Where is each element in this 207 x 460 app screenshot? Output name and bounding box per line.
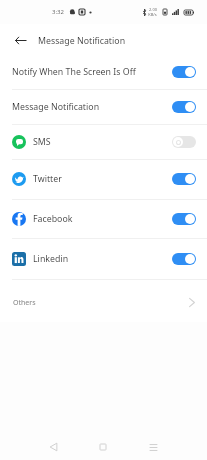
button[interactable]: Back [6,24,34,54]
button[interactable]: Linkedin [0,239,207,280]
button[interactable]: Enabled [172,101,196,113]
button[interactable]: Disabled [172,136,196,148]
button[interactable]: Twitter [0,160,207,200]
staticText: Others [13,298,36,308]
button[interactable]: Message Notification [0,90,207,125]
button[interactable]: Home [88,433,118,460]
staticText: Facebook [33,213,73,225]
button[interactable]: Facebook [0,200,207,239]
button[interactable]: Enabled [172,213,196,225]
button[interactable]: Enabled [172,66,196,78]
staticText: Notify When The Screen Is Off [12,66,136,78]
staticText: Twitter [33,173,62,185]
staticText: 3:32 [52,8,64,16]
staticText: Message Notification [12,101,100,113]
button[interactable]: Recent apps [138,433,168,460]
button[interactable]: Back [38,433,68,460]
staticText: Message Notification [38,35,126,47]
staticText: SMS [33,136,51,148]
button[interactable]: Others [0,280,207,322]
staticText: 2.00 [149,7,157,12]
button[interactable]: Enabled [172,173,196,185]
button[interactable]: Notify When The Screen Is Off [0,55,207,90]
button[interactable]: Enabled [172,253,196,265]
staticText: KB/s [148,12,157,17]
staticText: Linkedin [33,253,69,265]
button[interactable]: SMS [0,125,207,160]
